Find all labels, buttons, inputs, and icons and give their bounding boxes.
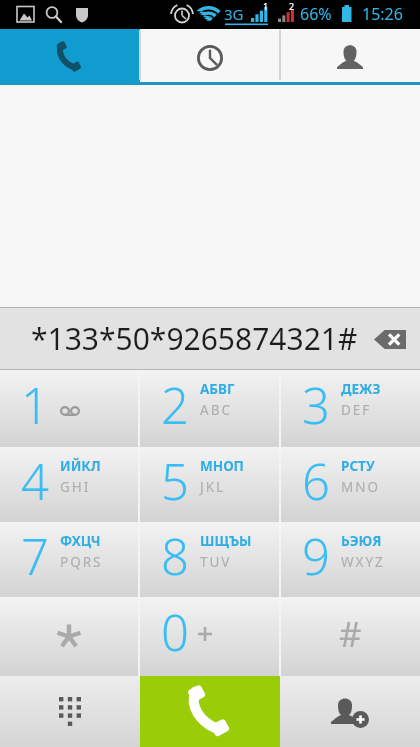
staticText: 2 <box>289 0 295 12</box>
staticText: ABC <box>200 401 232 419</box>
staticText: МНОП <box>200 457 244 475</box>
staticText: РСТУ <box>341 457 375 475</box>
button[interactable]: Add contact <box>280 676 420 747</box>
staticText: MNO <box>341 478 381 496</box>
staticText: ДЕЖЗ <box>341 380 381 398</box>
button[interactable]: 4 <box>0 447 138 522</box>
staticText: 5 <box>161 448 189 515</box>
staticText: 66% <box>300 3 332 25</box>
staticText: JKL <box>200 478 226 496</box>
staticText: 0 <box>161 599 189 666</box>
button[interactable]: 7 <box>0 522 138 597</box>
staticText: PQRS <box>60 553 103 571</box>
button[interactable]: 9 <box>281 522 420 597</box>
button[interactable]: 5 <box>140 447 279 522</box>
staticText: TUV <box>200 553 232 571</box>
staticText: ЬЭЮЯ <box>341 532 382 550</box>
staticText: 3G <box>224 4 244 24</box>
button[interactable]: 8 <box>140 522 279 597</box>
staticText: АБВГ <box>200 380 235 398</box>
button[interactable]: Call <box>140 676 280 747</box>
button[interactable]: 6 <box>281 447 420 522</box>
button[interactable]: Dialpad <box>0 676 140 747</box>
button[interactable]: Call log <box>140 29 280 85</box>
staticText: 4 <box>21 448 49 515</box>
staticText: 15:26 <box>362 3 403 25</box>
staticText: 8 <box>161 523 189 590</box>
button[interactable]: Contacts <box>280 29 420 85</box>
staticText: ШЩЪЫ <box>200 532 252 550</box>
staticText: 2 <box>161 372 189 439</box>
staticText: WXYZ <box>341 553 385 571</box>
staticText: DEF <box>341 401 372 419</box>
button[interactable]: 1 <box>0 370 138 447</box>
staticText: *133*50*9265874321# <box>31 318 358 359</box>
staticText: GHI <box>60 478 91 496</box>
button[interactable]: 0 <box>140 597 279 676</box>
staticText: 6 <box>302 448 330 515</box>
button[interactable]: Star <box>0 597 138 676</box>
staticText: 1 <box>263 0 269 12</box>
button[interactable]: Backspace <box>367 316 412 362</box>
staticText: 1 <box>21 372 49 439</box>
staticText: 3 <box>302 372 330 439</box>
staticText: ФХЦЧ <box>60 532 101 550</box>
staticText: # <box>339 610 362 658</box>
staticText: 9 <box>302 523 330 590</box>
button[interactable]: 3 <box>281 370 420 447</box>
button[interactable]: Dialer <box>0 29 140 85</box>
button[interactable]: 2 <box>140 370 279 447</box>
staticText: 7 <box>21 523 49 590</box>
staticText: ИЙКЛ <box>60 457 101 475</box>
button[interactable]: Hash <box>281 597 420 676</box>
